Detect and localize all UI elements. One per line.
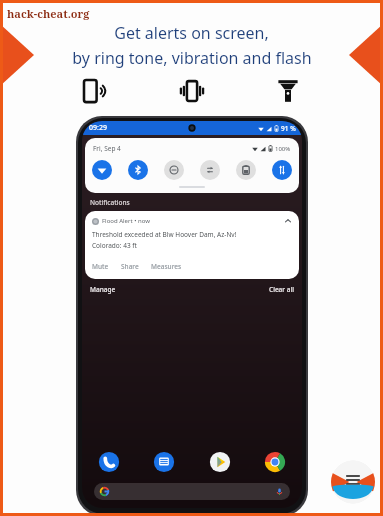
staticText: 09:29 [89, 123, 107, 133]
button[interactable]: Quick setting [164, 160, 184, 180]
button[interactable]: Search [94, 483, 290, 500]
button[interactable]: Messages [153, 451, 175, 473]
staticText: by ring tone, vibration and flash [72, 47, 312, 69]
staticText: Clear all [269, 285, 294, 294]
button[interactable]: Share [121, 262, 139, 271]
button[interactable]: Clear all [269, 285, 294, 294]
button[interactable]: Quick setting [128, 160, 148, 180]
staticText: Colorado: 43 ft [92, 241, 137, 250]
staticText: Mute [92, 262, 109, 271]
button[interactable]: Chrome [264, 451, 286, 473]
staticText: Fri, Sep 4 [93, 144, 121, 153]
button[interactable]: Flood Alert • now [85, 211, 299, 279]
button[interactable]: Quick setting [92, 160, 112, 180]
staticText: Flood Alert • now [102, 217, 150, 225]
button[interactable]: Collapse [284, 217, 292, 225]
staticText: Get alerts on screen, [114, 22, 269, 44]
button[interactable]: Mute [92, 262, 109, 271]
staticText: Notifications [90, 198, 130, 207]
staticText: 100% [275, 145, 291, 153]
staticText: Manage [90, 285, 116, 294]
other: Vibration [177, 76, 207, 106]
button[interactable]: Quick setting [200, 160, 220, 180]
other: Ring tone [81, 76, 111, 106]
button[interactable]: Manage [90, 285, 116, 294]
staticText: Measures [151, 262, 182, 271]
button[interactable]: App icon [331, 460, 375, 504]
button[interactable]: Phone [98, 451, 120, 473]
staticText: Share [121, 262, 139, 271]
other: Flash [273, 76, 303, 106]
staticText: 91 % [281, 124, 296, 133]
button[interactable]: Measures [151, 262, 182, 271]
button[interactable]: Quick setting [272, 160, 292, 180]
button[interactable]: Quick setting [236, 160, 256, 180]
button[interactable]: Play Store [209, 451, 231, 473]
staticText: hack-cheat.org [7, 6, 90, 21]
staticText: Threshold exceeded at Blw Hoover Dam, Az… [92, 230, 237, 239]
